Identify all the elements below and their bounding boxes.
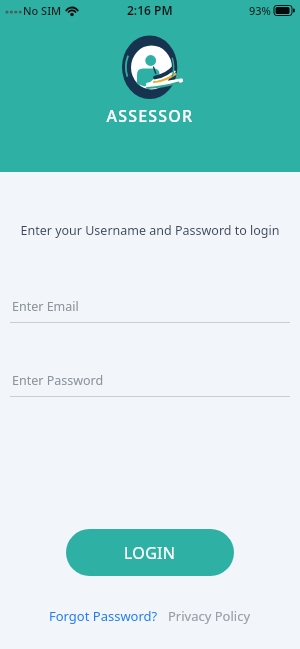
- staticText: No SIM: [23, 3, 62, 18]
- staticText: Enter your Username and Password to logi…: [0, 222, 300, 239]
- button[interactable]: Forgot Password?: [49, 607, 158, 625]
- staticText: 93%: [249, 3, 271, 18]
- button[interactable]: Enter Email: [10, 295, 290, 323]
- staticText: Enter Password: [12, 372, 104, 389]
- staticText: Enter Email: [12, 298, 79, 315]
- staticText: 2:16 PM: [127, 2, 173, 18]
- button[interactable]: Enter Password: [10, 369, 290, 397]
- button[interactable]: Privacy Policy: [168, 607, 251, 625]
- staticText: ASSESSOR: [0, 105, 300, 127]
- staticText: Privacy Policy: [168, 607, 251, 625]
- staticText: Forgot Password?: [49, 607, 158, 625]
- staticText: LOGIN: [124, 542, 176, 564]
- button[interactable]: LOGIN: [66, 529, 234, 576]
